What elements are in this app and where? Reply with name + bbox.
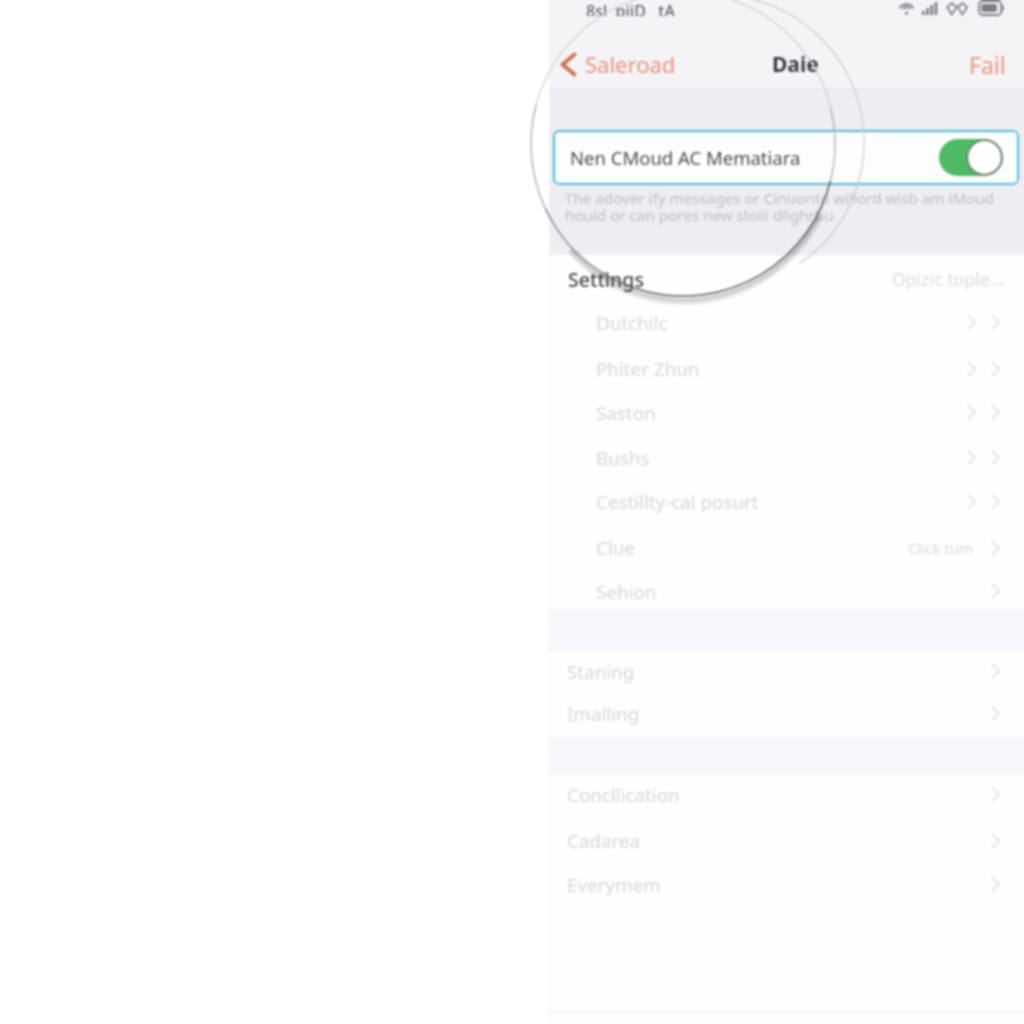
staticText: Bushs <box>596 445 650 471</box>
staticText: Dutchilc <box>596 310 668 336</box>
staticText: Imalling <box>567 701 640 727</box>
button[interactable]: Nen CMoud AC Mematiara <box>553 130 1019 185</box>
button[interactable]: Everymem <box>550 862 1024 907</box>
staticText: Saston <box>596 400 656 426</box>
staticText: Concllication <box>567 782 680 808</box>
button[interactable]: iCloud toggle, on <box>939 139 1003 176</box>
button[interactable]: Dutchilc <box>550 300 1024 345</box>
staticText: Settings <box>568 266 644 293</box>
staticText: Everymem <box>567 872 661 898</box>
staticText: 8sl piiD tA <box>586 0 675 16</box>
staticText: Staning <box>567 659 635 685</box>
button[interactable]: Concllication <box>550 772 1024 817</box>
staticText: Saleroad <box>585 49 676 79</box>
staticText: Opizic tople... <box>892 267 1004 291</box>
staticText: hould or can pores new sloiii dlighrbu <box>565 205 834 226</box>
staticText: Click tum <box>908 538 974 558</box>
staticText: The adover ify messages or Cinuonto will… <box>565 188 995 209</box>
button[interactable]: Phiter Zhun <box>550 346 1024 391</box>
button[interactable]: Fail <box>969 49 1006 80</box>
button[interactable]: Sehion <box>550 569 1024 614</box>
staticText: Cadarea <box>567 828 641 854</box>
staticText: Phiter Zhun <box>596 356 700 382</box>
staticText: Nen CMoud AC Mematiara <box>570 145 801 170</box>
staticText: Cestillty-cal posurt <box>596 489 759 515</box>
staticText: Daie <box>772 50 819 79</box>
staticText: Sehion <box>596 579 657 605</box>
button[interactable]: Back <box>561 49 676 79</box>
button[interactable]: Cestillty-cal posurt <box>550 479 1024 524</box>
other: Back <box>561 53 576 76</box>
staticText: Clue <box>596 535 635 561</box>
